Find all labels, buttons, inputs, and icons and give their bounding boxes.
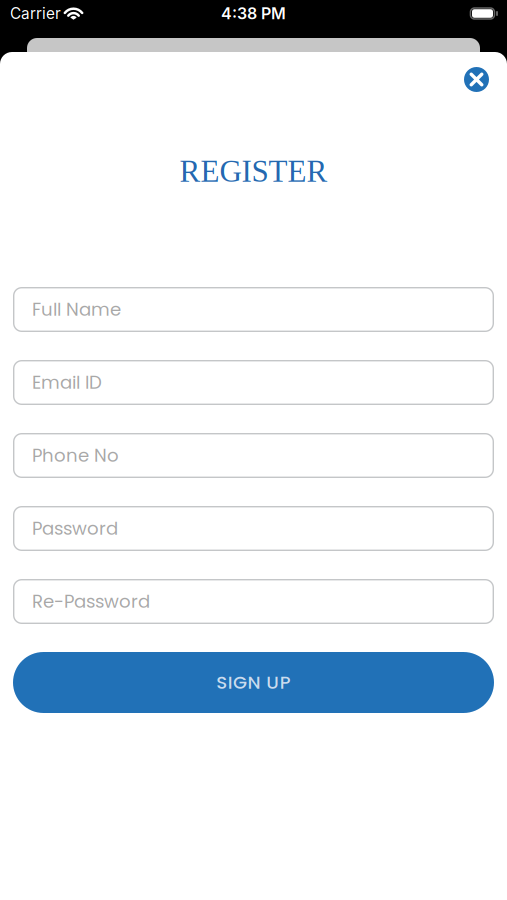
button[interactable]: Full Name	[13, 287, 494, 332]
button[interactable]: Password	[13, 506, 494, 551]
staticText: SIGN UP	[216, 670, 291, 695]
staticText: Password	[32, 516, 118, 541]
staticText: Re-Password	[32, 589, 150, 614]
button[interactable]: Phone No	[13, 433, 494, 478]
button[interactable]: Close	[464, 67, 489, 92]
button[interactable]: Email ID	[13, 360, 494, 405]
staticText: Carrier	[10, 4, 61, 23]
staticText: REGISTER	[179, 154, 327, 188]
staticText: Full Name	[32, 297, 121, 322]
button[interactable]: SIGN UP	[13, 652, 494, 713]
staticText: 4:38 PM	[221, 4, 286, 23]
staticText: Phone No	[32, 443, 119, 468]
button[interactable]: Re-Password	[13, 579, 494, 624]
staticText: Email ID	[32, 370, 102, 395]
